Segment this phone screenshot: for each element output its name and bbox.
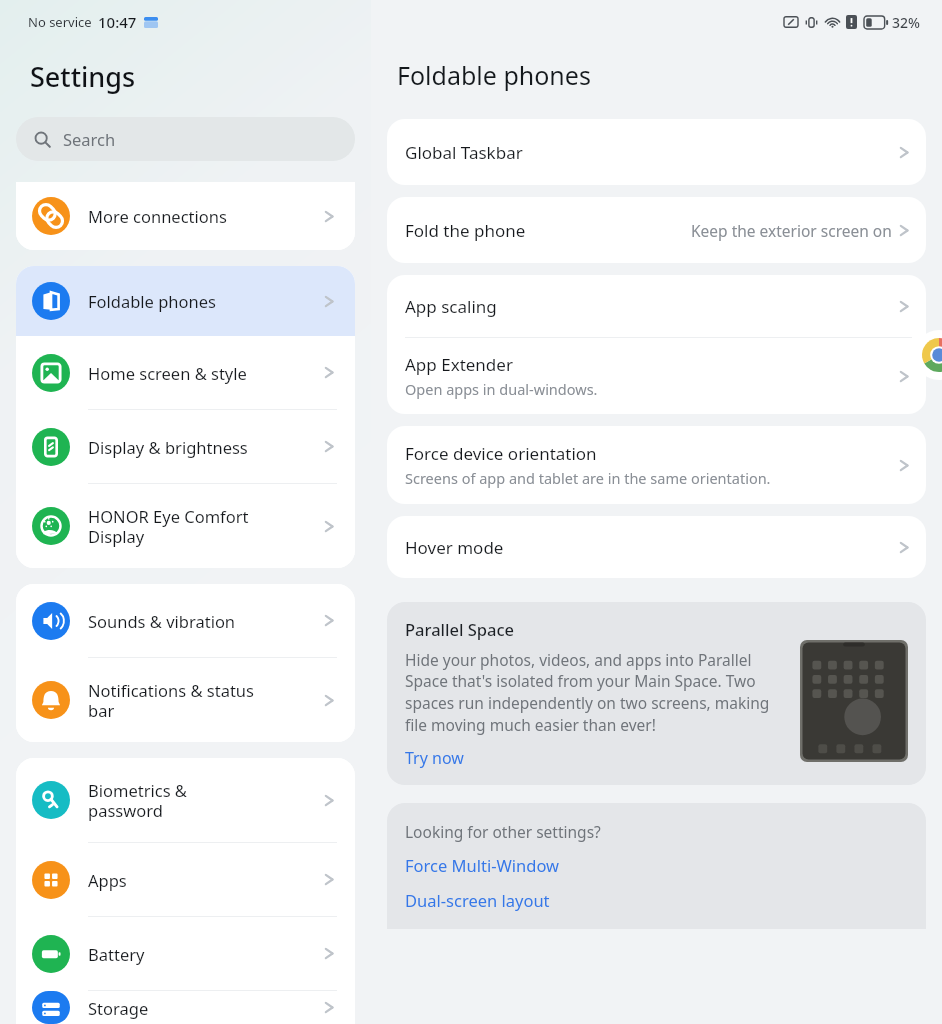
button[interactable]: Hover mode bbox=[387, 516, 926, 578]
button[interactable]: Global Taskbar bbox=[387, 119, 926, 185]
staticText: Notifications & status bar bbox=[88, 679, 315, 722]
button[interactable]: Dual-screen layout bbox=[405, 889, 908, 911]
button[interactable]: Apps bbox=[16, 843, 355, 916]
button[interactable]: Parallel Space bbox=[387, 602, 926, 785]
button[interactable]: Storage bbox=[16, 991, 355, 1024]
staticText: Biometrics & password bbox=[88, 779, 315, 822]
button[interactable]: Chrome floating window bbox=[914, 330, 942, 380]
staticText: Foldable phones bbox=[88, 290, 315, 312]
staticText: Keep the exterior screen on bbox=[691, 220, 892, 241]
staticText: Display & brightness bbox=[88, 436, 315, 458]
staticText: More connections bbox=[88, 205, 315, 227]
staticText: Settings bbox=[30, 58, 136, 95]
button[interactable]: HONOR Eye Comfort Display bbox=[16, 484, 355, 568]
staticText: Home screen & style bbox=[88, 362, 315, 384]
staticText: Search bbox=[63, 128, 116, 150]
button[interactable]: Try now bbox=[405, 747, 464, 769]
staticText: App Extender bbox=[405, 353, 513, 376]
button[interactable]: Sounds & vibration bbox=[16, 584, 355, 657]
staticText: 32% bbox=[892, 13, 920, 32]
staticText: Battery bbox=[88, 943, 315, 965]
staticText: Hover mode bbox=[405, 536, 504, 559]
button[interactable]: App scaling bbox=[387, 275, 926, 337]
button[interactable]: More connections bbox=[16, 182, 355, 250]
staticText: Storage bbox=[88, 997, 315, 1019]
staticText: Sounds & vibration bbox=[88, 610, 315, 632]
staticText: Force device orientation bbox=[405, 442, 597, 465]
staticText: Parallel Space bbox=[405, 618, 515, 640]
staticText: Open apps in dual-windows. bbox=[405, 379, 598, 399]
staticText: 10:47 bbox=[98, 12, 137, 32]
staticText: Foldable phones bbox=[397, 58, 591, 92]
staticText: Apps bbox=[88, 869, 315, 891]
staticText: Hide your photos, videos, and apps into … bbox=[405, 649, 786, 735]
staticText: Fold the phone bbox=[405, 219, 526, 242]
staticText: Screens of app and tablet are in the sam… bbox=[405, 468, 771, 488]
button[interactable]: Search bbox=[16, 117, 355, 161]
button[interactable]: Biometrics & password bbox=[16, 758, 355, 842]
button[interactable]: Fold the phone bbox=[387, 197, 926, 263]
button[interactable]: App Extender bbox=[387, 338, 926, 414]
button[interactable]: Force Multi-Window bbox=[405, 854, 908, 876]
staticText: App scaling bbox=[405, 295, 497, 318]
staticText: Global Taskbar bbox=[405, 141, 523, 164]
button[interactable]: Home screen & style bbox=[16, 336, 355, 409]
staticText: Looking for other settings? bbox=[405, 821, 601, 842]
staticText: No service bbox=[28, 13, 92, 31]
button[interactable]: Foldable phones bbox=[16, 266, 355, 336]
staticText: HONOR Eye Comfort Display bbox=[88, 505, 315, 548]
button[interactable]: Force device orientation bbox=[387, 426, 926, 504]
button[interactable]: Display & brightness bbox=[16, 410, 355, 483]
button[interactable]: Battery bbox=[16, 917, 355, 990]
button[interactable]: Notifications & status bar bbox=[16, 658, 355, 742]
